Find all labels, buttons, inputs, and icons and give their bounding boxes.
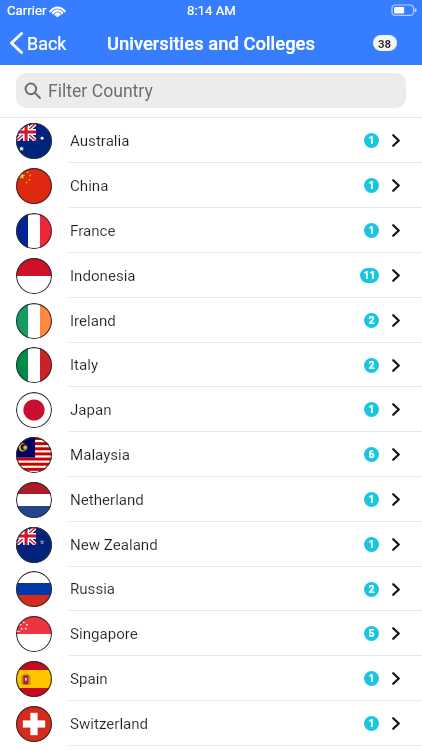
button[interactable]: Switzerland <box>0 701 422 746</box>
other: Open China <box>392 179 400 192</box>
button[interactable]: Singapore <box>0 611 422 656</box>
staticText: 1 <box>368 538 375 550</box>
button[interactable]: Netherland <box>0 477 422 522</box>
staticText: 2 <box>368 359 375 371</box>
button[interactable]: France <box>0 208 422 253</box>
other: Open France <box>392 224 400 237</box>
button[interactable]: Ireland <box>0 298 422 343</box>
staticText: Netherland <box>70 491 144 509</box>
staticText: 1 <box>368 672 375 684</box>
button[interactable]: Spain <box>0 656 422 701</box>
button[interactable]: Filter Country <box>16 73 406 108</box>
staticText: 2 <box>368 583 375 595</box>
other: Open Indonesia <box>392 269 400 282</box>
other: Open Malaysia <box>392 448 400 461</box>
staticText: China <box>70 177 109 195</box>
button[interactable]: Malaysia <box>0 432 422 477</box>
button[interactable]: Russia <box>0 567 422 611</box>
staticText: France <box>70 222 116 240</box>
staticText: Italy <box>70 356 99 374</box>
button[interactable]: China <box>0 163 422 208</box>
other: Open Australia <box>392 134 400 147</box>
staticText: Back <box>27 33 67 54</box>
staticText: 38 <box>378 37 392 50</box>
staticText: 2 <box>368 314 375 326</box>
staticText: Singapore <box>70 625 138 643</box>
other: Open Singapore <box>392 627 400 640</box>
staticText: Australia <box>70 132 130 150</box>
staticText: Malaysia <box>70 446 130 464</box>
button[interactable]: Australia <box>0 118 422 163</box>
button[interactable]: Japan <box>0 387 422 432</box>
staticText: Ireland <box>70 312 116 330</box>
staticText: 5 <box>368 627 375 639</box>
staticText: 1 <box>368 179 375 191</box>
button[interactable]: New Zealand <box>0 522 422 567</box>
other: Open Russia <box>392 583 400 596</box>
button[interactable]: Italy <box>0 343 422 387</box>
staticText: 8:14 AM <box>187 3 236 18</box>
other: Open Spain <box>392 672 400 685</box>
staticText: Switzerland <box>70 715 149 733</box>
staticText: 1 <box>368 134 375 146</box>
button[interactable]: 38 <box>373 35 397 51</box>
staticText: Universities and Colleges <box>107 33 315 55</box>
other: Open New Zealand <box>392 538 400 551</box>
staticText: Indonesia <box>70 267 136 285</box>
other: Open Italy <box>392 359 400 372</box>
staticText: Filter Country <box>48 81 153 102</box>
staticText: 6 <box>368 448 375 460</box>
staticText: 1 <box>368 493 375 505</box>
other: Open Ireland <box>392 314 400 327</box>
staticText: 11 <box>363 269 376 281</box>
staticText: Spain <box>70 670 108 688</box>
staticText: Russia <box>70 580 116 598</box>
other: Open Japan <box>392 403 400 416</box>
staticText: Japan <box>70 401 112 419</box>
staticText: 1 <box>368 717 375 729</box>
staticText: 1 <box>368 224 375 236</box>
button[interactable]: Back <box>0 22 77 64</box>
staticText: 1 <box>368 403 375 415</box>
staticText: New Zealand <box>70 536 158 554</box>
other: Open Netherland <box>392 493 400 506</box>
other: Open Switzerland <box>392 717 400 730</box>
button[interactable]: Indonesia <box>0 253 422 298</box>
staticText: Carrier <box>7 3 47 18</box>
